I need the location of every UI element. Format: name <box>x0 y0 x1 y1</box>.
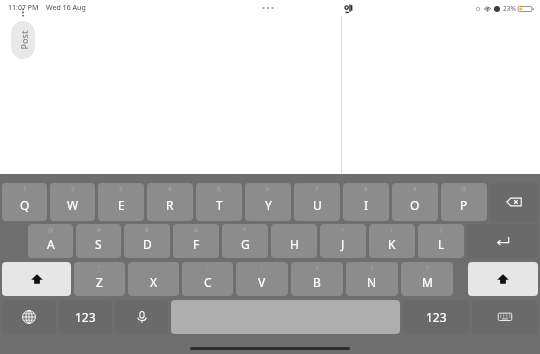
button[interactable]: @ <box>28 224 73 258</box>
staticText: 123 <box>426 309 447 325</box>
staticText: F <box>193 236 200 252</box>
staticText: I <box>364 197 369 213</box>
button[interactable]: ! <box>346 262 398 296</box>
button[interactable]: 3 <box>98 183 144 221</box>
button[interactable]: Post <box>11 21 35 59</box>
staticText: G <box>241 236 250 252</box>
staticText: N <box>367 274 377 290</box>
staticText: 7 <box>315 185 319 193</box>
staticText: : <box>207 264 209 272</box>
staticText: 11:07 PM <box>8 3 39 13</box>
staticText: H <box>290 236 299 252</box>
staticText: 8 <box>364 185 368 193</box>
staticText: C <box>204 274 212 290</box>
staticText: S <box>95 236 102 252</box>
staticText: " <box>98 264 101 272</box>
button[interactable]: Shift <box>2 262 71 296</box>
staticText: U <box>313 197 322 213</box>
button[interactable]: & <box>173 224 219 258</box>
staticText: R <box>166 197 174 213</box>
button[interactable]: - <box>271 224 317 258</box>
staticText: A <box>47 236 55 252</box>
staticText: D <box>143 236 152 252</box>
staticText: ? <box>426 264 429 272</box>
staticText: 4 <box>168 185 172 193</box>
staticText: L <box>438 236 445 252</box>
staticText: + <box>341 226 345 234</box>
staticText: K <box>388 236 396 252</box>
button[interactable]: Accessibility <box>343 2 357 16</box>
staticText: $ <box>145 226 149 234</box>
staticText: ; <box>261 264 263 272</box>
staticText: P <box>460 197 468 213</box>
staticText: @ <box>48 226 54 234</box>
staticText: J <box>341 236 345 252</box>
staticText: 3 <box>119 185 123 193</box>
staticText: 9 <box>413 185 417 193</box>
button[interactable]: # <box>76 224 121 258</box>
staticText: 123 <box>75 309 96 325</box>
staticText: W <box>67 197 79 213</box>
button[interactable]: Enter <box>467 224 538 258</box>
button[interactable]: 4 <box>147 183 193 221</box>
button[interactable]: 123 <box>403 300 469 334</box>
staticText: & <box>194 226 199 234</box>
button[interactable]: Shift <box>468 262 538 296</box>
button[interactable]: ' <box>128 262 179 296</box>
button[interactable]: 1 <box>2 183 47 221</box>
staticText: ) <box>440 226 442 234</box>
staticText: Z <box>96 274 103 290</box>
staticText: Post <box>17 30 29 49</box>
staticText: O <box>410 197 420 213</box>
button[interactable]: Backspace <box>490 183 538 221</box>
button[interactable]: : <box>182 262 233 296</box>
staticText: T <box>216 197 223 213</box>
staticText: ! <box>371 264 373 272</box>
button[interactable]: + <box>320 224 366 258</box>
button[interactable]: " <box>74 262 125 296</box>
button[interactable]: 123 <box>59 300 112 334</box>
staticText: V <box>258 274 266 290</box>
staticText: Q <box>20 197 30 213</box>
staticText: 1 <box>23 185 27 193</box>
button[interactable]: Hide keyboard <box>472 300 538 334</box>
button[interactable]: ? <box>401 262 453 296</box>
button[interactable]: 0 <box>441 183 487 221</box>
staticText: Wed 16 Aug <box>46 3 86 13</box>
staticText: 2 <box>71 185 75 193</box>
staticText: ' <box>153 264 155 272</box>
button[interactable]: * <box>222 224 268 258</box>
button[interactable]: Voice input <box>115 300 168 334</box>
staticText: X <box>150 274 158 290</box>
staticText: 23% <box>503 4 516 13</box>
button[interactable]: ; <box>236 262 288 296</box>
staticText: / <box>316 264 319 272</box>
staticText: 5 <box>217 185 221 193</box>
button[interactable]: 2 <box>50 183 95 221</box>
button[interactable]: ( <box>369 224 415 258</box>
button[interactable]: 9 <box>392 183 438 221</box>
staticText: # <box>97 226 101 234</box>
staticText: 0 <box>462 185 466 193</box>
button[interactable]: 6 <box>245 183 291 221</box>
staticText: - <box>293 226 295 234</box>
staticText: Y <box>265 197 272 213</box>
staticText: M <box>422 274 433 290</box>
button[interactable]: 7 <box>294 183 340 221</box>
staticText: 6 <box>266 185 270 193</box>
staticText: * <box>243 226 247 234</box>
staticText: B <box>313 274 321 290</box>
button[interactable]: ) <box>418 224 464 258</box>
button[interactable]: 8 <box>343 183 389 221</box>
button[interactable]: 5 <box>196 183 242 221</box>
staticText: ( <box>391 226 393 234</box>
staticText: E <box>118 197 125 213</box>
button[interactable]: Change language <box>2 300 56 334</box>
button[interactable]: $ <box>124 224 170 258</box>
button[interactable]: / <box>291 262 343 296</box>
